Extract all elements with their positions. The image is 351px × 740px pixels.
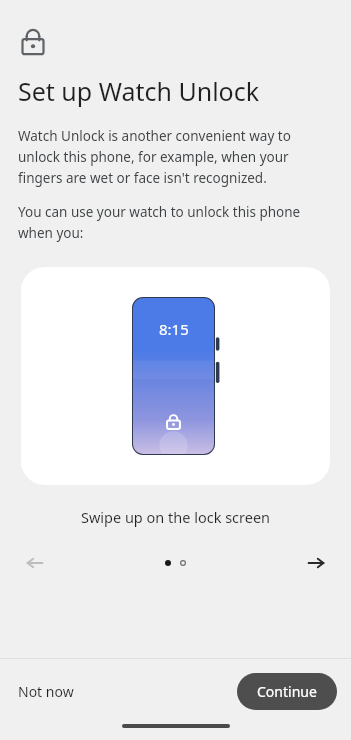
staticText: Not now [18,682,74,701]
button[interactable]: Next [301,548,331,578]
staticText: Continue [257,682,317,701]
button[interactable]: Previous [20,548,50,578]
button[interactable]: Not now [0,674,88,709]
staticText: Swipe up on the lock screen [20,507,331,527]
staticText: Set up Watch Unlock [18,74,260,108]
staticText: You can use your watch to unlock this ph… [18,203,327,242]
staticText: Watch Unlock is another convenient way t… [18,127,327,187]
button[interactable]: Continue [237,673,337,710]
staticText: 8:15 [159,319,189,339]
